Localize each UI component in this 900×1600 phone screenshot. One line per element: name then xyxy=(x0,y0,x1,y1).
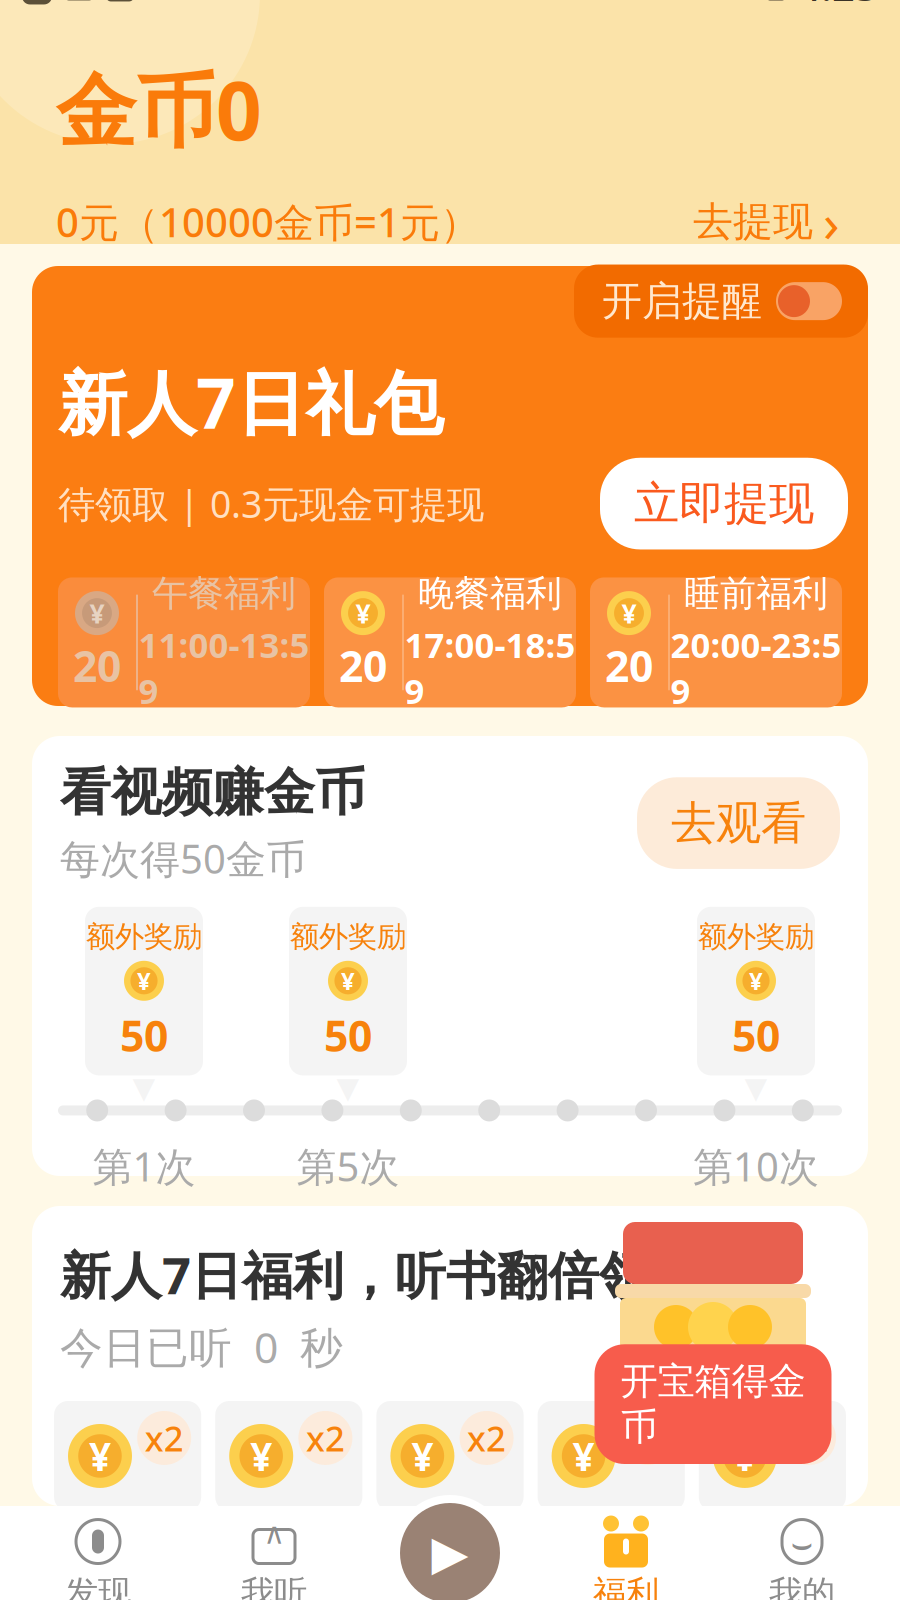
staticText: 今日已听 0 秒 xyxy=(60,1318,343,1375)
staticText: 20 xyxy=(605,637,653,694)
staticText: x2 xyxy=(467,1415,506,1461)
button[interactable]: 开宝箱得金币 xyxy=(594,1344,831,1464)
staticText: ¥ xyxy=(89,1430,111,1482)
staticText: 待领取 | 0.3元现金可提现 xyxy=(58,479,484,528)
staticText: 睡前福利 xyxy=(684,571,828,615)
staticText: x2 xyxy=(145,1415,184,1461)
staticText: ⌣ xyxy=(790,1528,813,1561)
staticText: 0元（10000金币=1元） xyxy=(56,195,480,248)
staticText: ▾ xyxy=(744,1061,767,1112)
staticText: ¥ xyxy=(250,1430,272,1482)
staticText: 20 xyxy=(73,637,121,694)
button[interactable]: 立即提现 xyxy=(600,458,848,549)
staticText: 午餐福利 xyxy=(152,571,296,615)
staticText: 立即提现 xyxy=(634,476,814,531)
button[interactable]: 开启提醒 xyxy=(574,265,868,338)
staticText: ¥ xyxy=(573,1430,595,1482)
staticText: ¥ xyxy=(137,965,151,997)
button[interactable]: 福利 xyxy=(538,1518,714,1600)
staticText: 额外奖励 xyxy=(86,919,202,955)
staticText: 去观看 xyxy=(671,795,806,851)
staticText: 福利 xyxy=(593,1572,659,1600)
staticText: ∧ xyxy=(263,1517,284,1550)
staticText: 晚餐福利 xyxy=(418,571,562,615)
staticText: 额外奖励 xyxy=(698,919,814,955)
staticText: 第10次 xyxy=(693,1139,819,1193)
staticText: ¥ xyxy=(734,1430,756,1482)
staticText: ¥ xyxy=(749,965,763,997)
staticText: 11:00-13:59 xyxy=(138,621,309,714)
staticText: ▾ xyxy=(336,1061,359,1112)
staticText: 发现 xyxy=(65,1572,131,1600)
staticText: 20 xyxy=(339,637,387,694)
staticText: 4:23 xyxy=(798,0,878,12)
staticText: 开启提醒 xyxy=(602,277,762,326)
staticText: 我听 xyxy=(241,1572,307,1600)
button[interactable]: 去观看 xyxy=(637,777,840,869)
staticText: 17:00-18:59 xyxy=(404,621,575,714)
button[interactable]: 发现 xyxy=(10,1518,186,1600)
staticText: 开宝箱得金币 xyxy=(620,1358,805,1450)
staticText: 金币0 xyxy=(56,56,262,162)
staticText: 新人7日福利，听书翻倍领金币 xyxy=(60,1241,752,1308)
staticText: ¥ xyxy=(621,595,636,631)
button[interactable]: ⌣ xyxy=(714,1518,890,1600)
staticText: ¥ xyxy=(355,595,370,631)
staticText: 去提现 xyxy=(693,197,813,246)
staticText: x2 xyxy=(306,1415,345,1461)
staticText: ▶ xyxy=(431,1526,468,1580)
staticText: 50 xyxy=(324,1007,372,1063)
staticText: ▾ xyxy=(132,1061,155,1112)
button[interactable]: 去提现 xyxy=(689,180,844,263)
staticText: 额外奖励 xyxy=(290,919,406,955)
staticText: 50 xyxy=(120,1007,168,1063)
staticText: 20:00-23:59 xyxy=(670,621,841,714)
button[interactable]: 播放 xyxy=(390,1493,510,1600)
staticText: › xyxy=(823,186,840,257)
staticText: ¥ xyxy=(411,1430,433,1482)
staticText: 看视频赚金币 xyxy=(60,761,366,824)
button[interactable]: ¥ xyxy=(58,577,310,707)
staticText: ¥ xyxy=(341,965,355,997)
staticText: 新人7日礼包 xyxy=(58,356,443,448)
button[interactable]: ∧ xyxy=(186,1518,362,1600)
staticText: 第1次 xyxy=(92,1139,195,1193)
button[interactable]: ¥ xyxy=(324,577,576,707)
staticText: 50 xyxy=(732,1007,780,1063)
staticText: 每次得50金币 xyxy=(60,832,306,885)
staticText: ¥ xyxy=(89,595,104,631)
staticText: 第5次 xyxy=(296,1139,399,1193)
button[interactable]: ¥ xyxy=(590,577,842,707)
staticText: x2 xyxy=(789,1415,828,1461)
staticText: x2 xyxy=(628,1415,667,1461)
staticText: 我的 xyxy=(769,1572,835,1600)
